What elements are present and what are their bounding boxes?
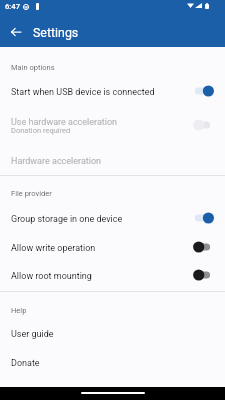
staticText: Settings	[33, 25, 79, 40]
staticText: Allow root mounting	[11, 271, 92, 282]
staticText: Use hardware acceleration	[11, 117, 118, 128]
button[interactable]: Allow write operation	[0, 233, 225, 261]
staticText: Allow write operation	[11, 243, 96, 254]
staticText: User guide	[11, 329, 54, 340]
staticText: 6:47	[5, 2, 20, 11]
button[interactable]: Navigate up	[2, 18, 30, 47]
button[interactable]: User guide	[0, 319, 225, 347]
staticText: File provider	[11, 189, 52, 198]
button[interactable]: Allow root mounting	[0, 261, 225, 289]
staticText: Donate	[11, 358, 40, 369]
button[interactable]: Start when USB device is connected	[0, 77, 225, 105]
staticText: Donation required	[11, 126, 71, 135]
button[interactable]: Group storage in one device	[0, 204, 225, 232]
button[interactable]: Use hardware acceleration	[0, 107, 225, 141]
button[interactable]: Donate	[0, 348, 225, 376]
staticText: Main options	[11, 63, 55, 72]
button[interactable]: Hardware acceleration	[0, 146, 225, 174]
staticText: Start when USB device is connected	[11, 87, 155, 98]
staticText: Hardware acceleration	[11, 156, 102, 167]
staticText: Group storage in one device	[11, 214, 123, 225]
staticText: Help	[11, 306, 27, 315]
